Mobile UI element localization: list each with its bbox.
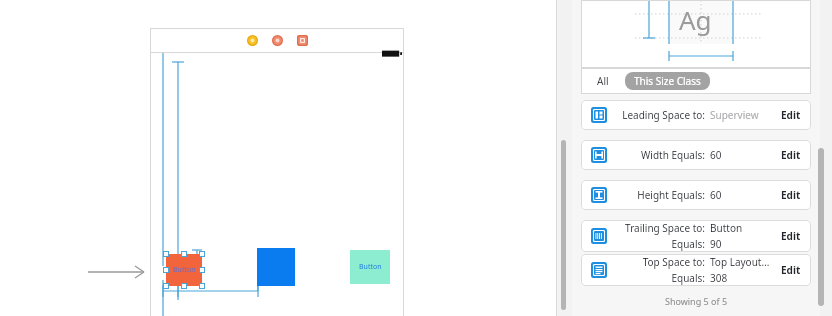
staticText: 90 bbox=[710, 237, 722, 251]
button[interactable]: Warnings bbox=[247, 35, 258, 46]
button[interactable]: Leading Space to: bbox=[581, 100, 811, 130]
staticText: Height Equals: bbox=[637, 188, 705, 202]
staticText: 308 bbox=[710, 271, 728, 285]
button[interactable]: Width Equals: bbox=[581, 140, 811, 170]
button[interactable]: Button bbox=[166, 254, 202, 286]
button[interactable]: Errors bbox=[272, 35, 283, 46]
button[interactable]: Edit bbox=[781, 188, 801, 202]
button[interactable]: Top Space to: bbox=[581, 254, 811, 286]
button[interactable]: Edit bbox=[781, 108, 801, 122]
staticText: Button bbox=[173, 265, 196, 275]
staticText: Width Equals: bbox=[641, 148, 705, 162]
staticText: Superview bbox=[710, 108, 759, 122]
button[interactable]: Update frames bbox=[297, 35, 308, 46]
staticText: 60 bbox=[710, 148, 722, 162]
button[interactable]: Edit bbox=[781, 263, 801, 277]
staticText: Equals: bbox=[671, 271, 705, 285]
button[interactable]: Trailing Space to: bbox=[581, 220, 811, 252]
staticText: All bbox=[597, 74, 609, 88]
button[interactable]: Height Equals: bbox=[581, 180, 811, 210]
staticText: Top Layout… bbox=[710, 255, 770, 269]
button[interactable]: This Size Class bbox=[625, 72, 710, 90]
staticText: Equals: bbox=[671, 237, 705, 251]
staticText: Ag bbox=[679, 2, 712, 37]
button[interactable]: Button bbox=[350, 250, 390, 284]
button[interactable]: Edit bbox=[781, 148, 801, 162]
staticText: Leading Space to: bbox=[622, 108, 705, 122]
staticText: Button bbox=[710, 221, 743, 235]
button[interactable]: Edit bbox=[781, 229, 801, 243]
staticText: Top Space to: bbox=[642, 255, 705, 269]
staticText: 60 bbox=[710, 188, 722, 202]
staticText: Showing 5 of 5 bbox=[581, 295, 811, 307]
staticText: Trailing Space to: bbox=[625, 221, 705, 235]
button[interactable]: All bbox=[593, 71, 613, 91]
staticText: Button bbox=[359, 262, 382, 272]
staticText: This Size Class bbox=[634, 74, 701, 88]
